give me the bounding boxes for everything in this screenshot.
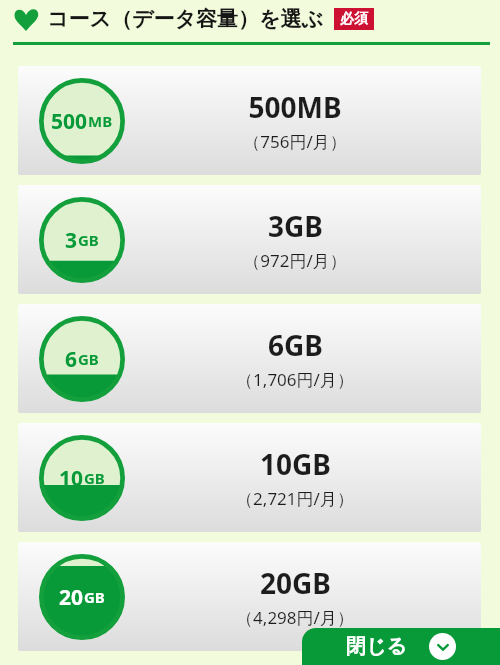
other: Close (429, 633, 456, 660)
staticText: 500 (51, 107, 88, 136)
staticText: GB (78, 230, 99, 250)
staticText: MB (88, 111, 113, 131)
button[interactable]: 500 (18, 66, 481, 175)
staticText: （1,706円/月） (236, 368, 354, 391)
button[interactable]: 20 (18, 542, 481, 651)
staticText: コース（データ容量）を選ぶ (47, 6, 323, 32)
staticText: 20 (59, 583, 84, 612)
staticText: （756円/月） (243, 130, 347, 153)
staticText: 閉じる (346, 634, 407, 659)
staticText: 3 (65, 226, 78, 255)
staticText: 500MB (248, 88, 342, 126)
staticText: 6 (65, 345, 78, 374)
button[interactable]: 閉じる (302, 628, 500, 665)
staticText: GB (78, 349, 99, 369)
staticText: （4,298円/月） (236, 606, 354, 629)
staticText: 20GB (260, 564, 331, 602)
staticText: （972円/月） (243, 249, 347, 272)
staticText: 10 (59, 464, 84, 493)
staticText: 6GB (268, 326, 323, 364)
staticText: GB (84, 468, 105, 488)
staticText: 必須 (340, 10, 368, 28)
button[interactable]: 10 (18, 423, 481, 532)
button[interactable]: 3 (18, 185, 481, 294)
staticText: GB (84, 587, 105, 607)
staticText: （2,721円/月） (236, 487, 354, 510)
staticText: 10GB (260, 445, 331, 483)
staticText: 3GB (268, 207, 323, 245)
button[interactable]: 6 (18, 304, 481, 413)
